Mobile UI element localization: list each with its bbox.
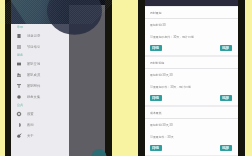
staticText: 可量最短的件：30天，预计日期: [150, 85, 191, 89]
staticText: 团队成员: [27, 73, 41, 77]
button[interactable]: 夜间: [11, 119, 69, 130]
staticText: 选择: [222, 146, 230, 151]
staticText: 夜间: [27, 123, 34, 127]
staticText: 公共: [17, 103, 23, 107]
button[interactable]: 选择: [220, 145, 232, 151]
staticText: 可量最短件：30天: [150, 135, 174, 139]
staticText: 关于: [27, 134, 34, 138]
staticText: 常用: [17, 25, 23, 29]
button[interactable]: 团队附件: [11, 80, 69, 91]
staticText: 节目指引: [27, 45, 41, 49]
staticText: 历时时间短: [150, 61, 165, 65]
staticText: 团队附件: [27, 84, 41, 88]
button[interactable]: 详情: [150, 145, 162, 151]
staticText: 团队空间: [27, 62, 41, 66]
staticText: 设置: [27, 112, 34, 116]
button[interactable]: 消息记录: [11, 30, 69, 41]
staticText: 详情: [152, 146, 160, 151]
staticText: 详情: [152, 46, 160, 51]
button[interactable]: 详情: [150, 45, 162, 51]
staticText: 详情: [152, 96, 160, 101]
staticText: 消息记录: [27, 34, 41, 38]
staticText: 服务: [17, 53, 23, 57]
button[interactable]: 节目指引: [11, 41, 69, 52]
button[interactable]: 关于: [11, 130, 69, 141]
button[interactable]: 团队空间: [11, 58, 69, 69]
staticText: 最短时间:30: [150, 23, 166, 27]
staticText: 最短时间:30天,30: [150, 73, 173, 77]
button[interactable]: 详情: [150, 95, 162, 101]
button[interactable]: 群角文集: [11, 91, 69, 102]
staticText: 最短时间:30天,30: [150, 123, 173, 127]
staticText: 选择: [222, 96, 230, 101]
staticText: 历时最短: [150, 11, 162, 15]
staticText: 可量最短的条件：30天，预计日期: [150, 35, 194, 39]
button[interactable]: 团队成员: [11, 69, 69, 80]
staticText: 成本最低: [150, 111, 162, 115]
button[interactable]: 选择: [220, 45, 232, 51]
button[interactable]: 设置: [11, 108, 69, 119]
button[interactable]: 选择: [220, 95, 232, 101]
staticText: 群角文集: [27, 95, 41, 99]
staticText: 选择: [222, 46, 230, 51]
